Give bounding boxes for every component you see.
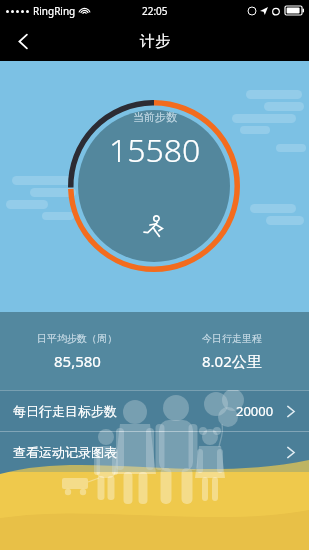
staticText: 20000 [236,402,274,420]
staticText: 每日行走目标步数 [13,403,117,419]
staticText: 今日行走里程 [202,332,262,345]
staticText: 22:05 [142,4,168,18]
button[interactable]: 每日行走目标步数 [0,391,309,431]
button[interactable]: 查看运动记录图表 [0,432,309,472]
staticText: 计步 [140,32,170,51]
staticText: 8.02公里 [202,351,262,371]
staticText: 85,580 [54,351,101,371]
staticText: 日平均步数（周） [37,332,117,345]
staticText: 查看运动记录图表 [13,444,117,460]
staticText: 当前步数 [133,110,177,124]
staticText: 15580 [109,128,201,172]
button[interactable]: Back [0,21,46,61]
staticText: RingRing [33,4,76,18]
